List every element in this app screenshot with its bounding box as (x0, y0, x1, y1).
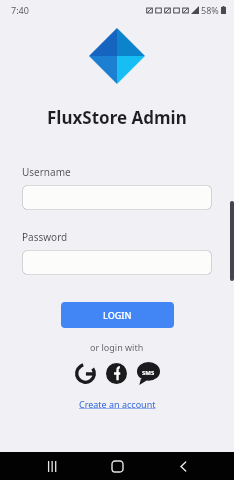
staticText: Username (22, 165, 71, 179)
staticText: Create an account (79, 398, 156, 410)
button[interactable] (22, 185, 212, 210)
staticText: Password (22, 230, 68, 244)
staticText: LOGIN (103, 309, 132, 321)
staticText: 58% (201, 4, 219, 16)
button[interactable]: Sign in with Google (75, 363, 96, 384)
staticText: SMS (142, 369, 155, 377)
staticText: or login with (90, 341, 144, 353)
staticText: FluxStore Admin (47, 106, 187, 129)
button[interactable]: Create an account (75, 396, 160, 412)
staticText: 7:40 (11, 4, 29, 16)
button[interactable]: Sign in with Facebook (106, 363, 127, 384)
button[interactable]: Recents (38, 452, 66, 480)
button[interactable]: Back (169, 452, 197, 480)
button[interactable]: Home (103, 452, 131, 480)
button[interactable] (22, 250, 212, 275)
button[interactable]: LOGIN (61, 302, 174, 328)
button[interactable]: Sign in with SMS (137, 362, 160, 385)
